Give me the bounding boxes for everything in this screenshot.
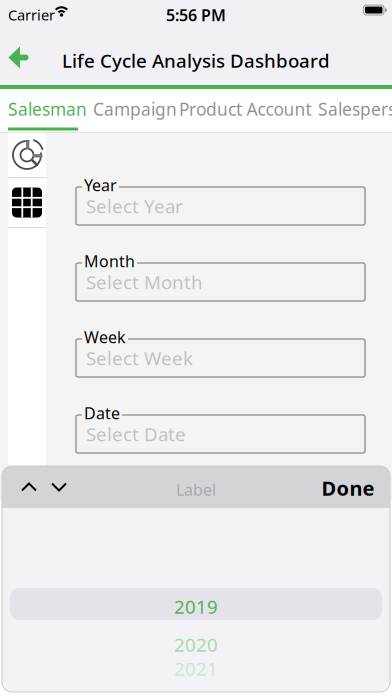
staticText: Life Cycle Analysis Dashboard	[62, 48, 330, 73]
staticText: 2020	[174, 632, 218, 657]
staticText: Label	[176, 479, 216, 500]
button[interactable]: Chart view	[8, 133, 46, 177]
staticText: Done	[321, 475, 374, 501]
staticText: Year	[84, 174, 117, 196]
staticText: Date	[84, 402, 120, 424]
staticText: Week	[84, 326, 126, 348]
button[interactable]: Back	[4, 40, 40, 76]
staticText: Salesperson	[318, 97, 392, 120]
staticText: Month	[84, 250, 135, 272]
button[interactable]: Done	[318, 474, 378, 502]
staticText: Select Month	[86, 270, 203, 294]
staticText: 2021	[174, 656, 218, 681]
staticText: Campaign	[93, 97, 177, 120]
button[interactable]: Grid view	[8, 178, 46, 227]
staticText: Select Date	[86, 422, 186, 446]
staticText: Salesman	[8, 97, 87, 120]
button[interactable]: Select Month	[76, 263, 365, 301]
button[interactable]: Select Week	[76, 339, 365, 377]
button[interactable]: Select Date	[76, 415, 365, 453]
staticText: Carrier	[8, 5, 55, 24]
staticText: Account	[246, 97, 311, 120]
button[interactable]: Account	[246, 89, 311, 129]
staticText: Select Year	[86, 194, 183, 218]
button[interactable]: Next	[50, 480, 68, 494]
staticText: Product	[179, 97, 242, 120]
button[interactable]: Previous	[20, 480, 38, 494]
button[interactable]: Product	[179, 89, 242, 129]
button[interactable]: Salesman	[8, 89, 87, 129]
button[interactable]: Campaign	[93, 89, 177, 129]
staticText: 2019	[174, 594, 218, 619]
button[interactable]: Select Year	[76, 187, 365, 225]
staticText: Select Week	[86, 346, 193, 370]
staticText: 5:56 PM	[166, 4, 226, 26]
button[interactable]: Salesperson	[318, 89, 392, 129]
